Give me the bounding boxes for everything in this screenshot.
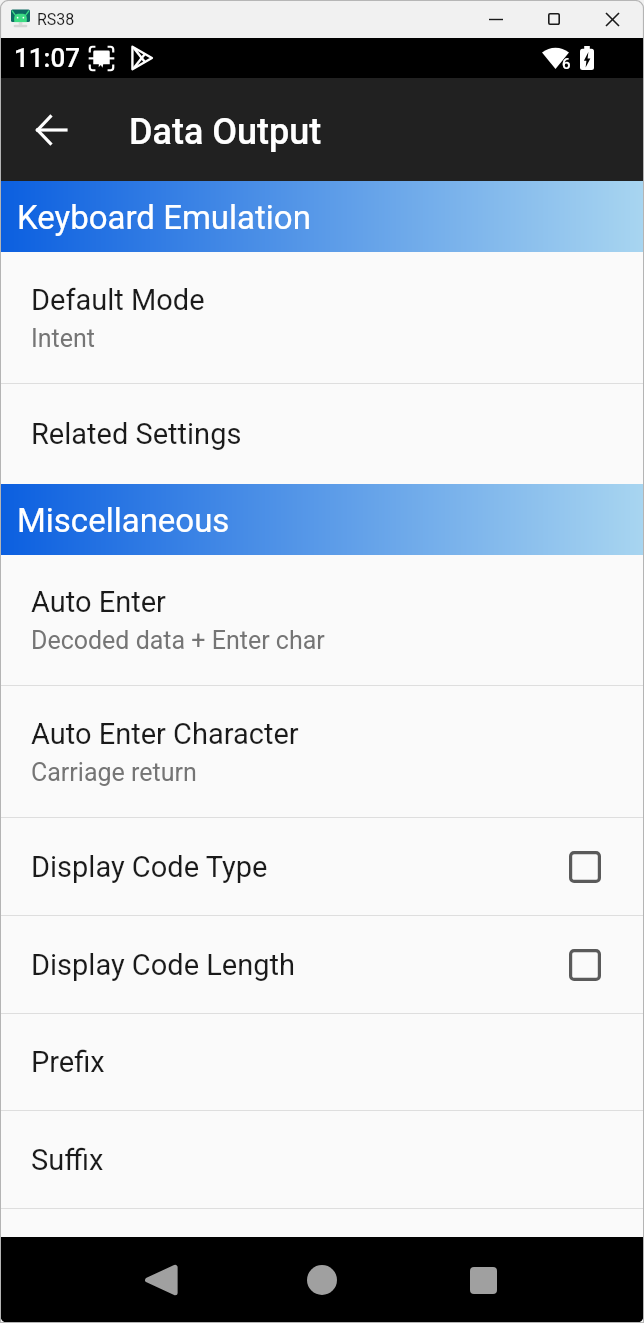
button[interactable]: Back: [15, 94, 86, 165]
staticText: Auto Enter Character: [31, 717, 299, 751]
button[interactable]: Close: [583, 0, 642, 38]
button[interactable]: Home: [282, 1237, 362, 1323]
button[interactable]: Maximize: [524, 0, 583, 38]
staticText: Display Code Length: [31, 948, 295, 982]
staticText: Suffix: [31, 1143, 104, 1177]
staticText: Default Mode: [31, 283, 205, 317]
button[interactable]: Auto Enter: [0, 555, 644, 685]
button[interactable]: Auto Enter Character: [0, 686, 644, 817]
button[interactable]: Minimize: [467, 0, 524, 38]
button[interactable]: Display Code Length: [0, 916, 644, 1013]
staticText: Intent: [31, 324, 96, 353]
staticText: Decoded data + Enter char: [31, 626, 325, 655]
staticText: Carriage return: [31, 758, 197, 787]
staticText: 11:07: [14, 43, 80, 73]
staticText: Auto Enter: [31, 585, 166, 619]
button[interactable]: Recent apps: [443, 1237, 523, 1323]
button[interactable]: Prefix: [0, 1014, 644, 1110]
staticText: Related Settings: [31, 417, 242, 451]
button[interactable]: Back: [121, 1237, 201, 1323]
staticText: Prefix: [31, 1045, 105, 1079]
staticText: 6: [562, 55, 571, 73]
staticText: Keyboard Emulation: [17, 198, 311, 237]
button[interactable]: Display Code Type: [0, 818, 644, 915]
button[interactable]: Related Settings: [0, 384, 644, 484]
staticText: RS38: [37, 10, 75, 29]
button[interactable]: Default Mode: [0, 252, 644, 383]
button[interactable]: Suffix: [0, 1111, 644, 1208]
staticText: Miscellaneous: [17, 501, 230, 540]
staticText: Display Code Type: [31, 850, 268, 884]
staticText: Data Output: [129, 111, 322, 153]
